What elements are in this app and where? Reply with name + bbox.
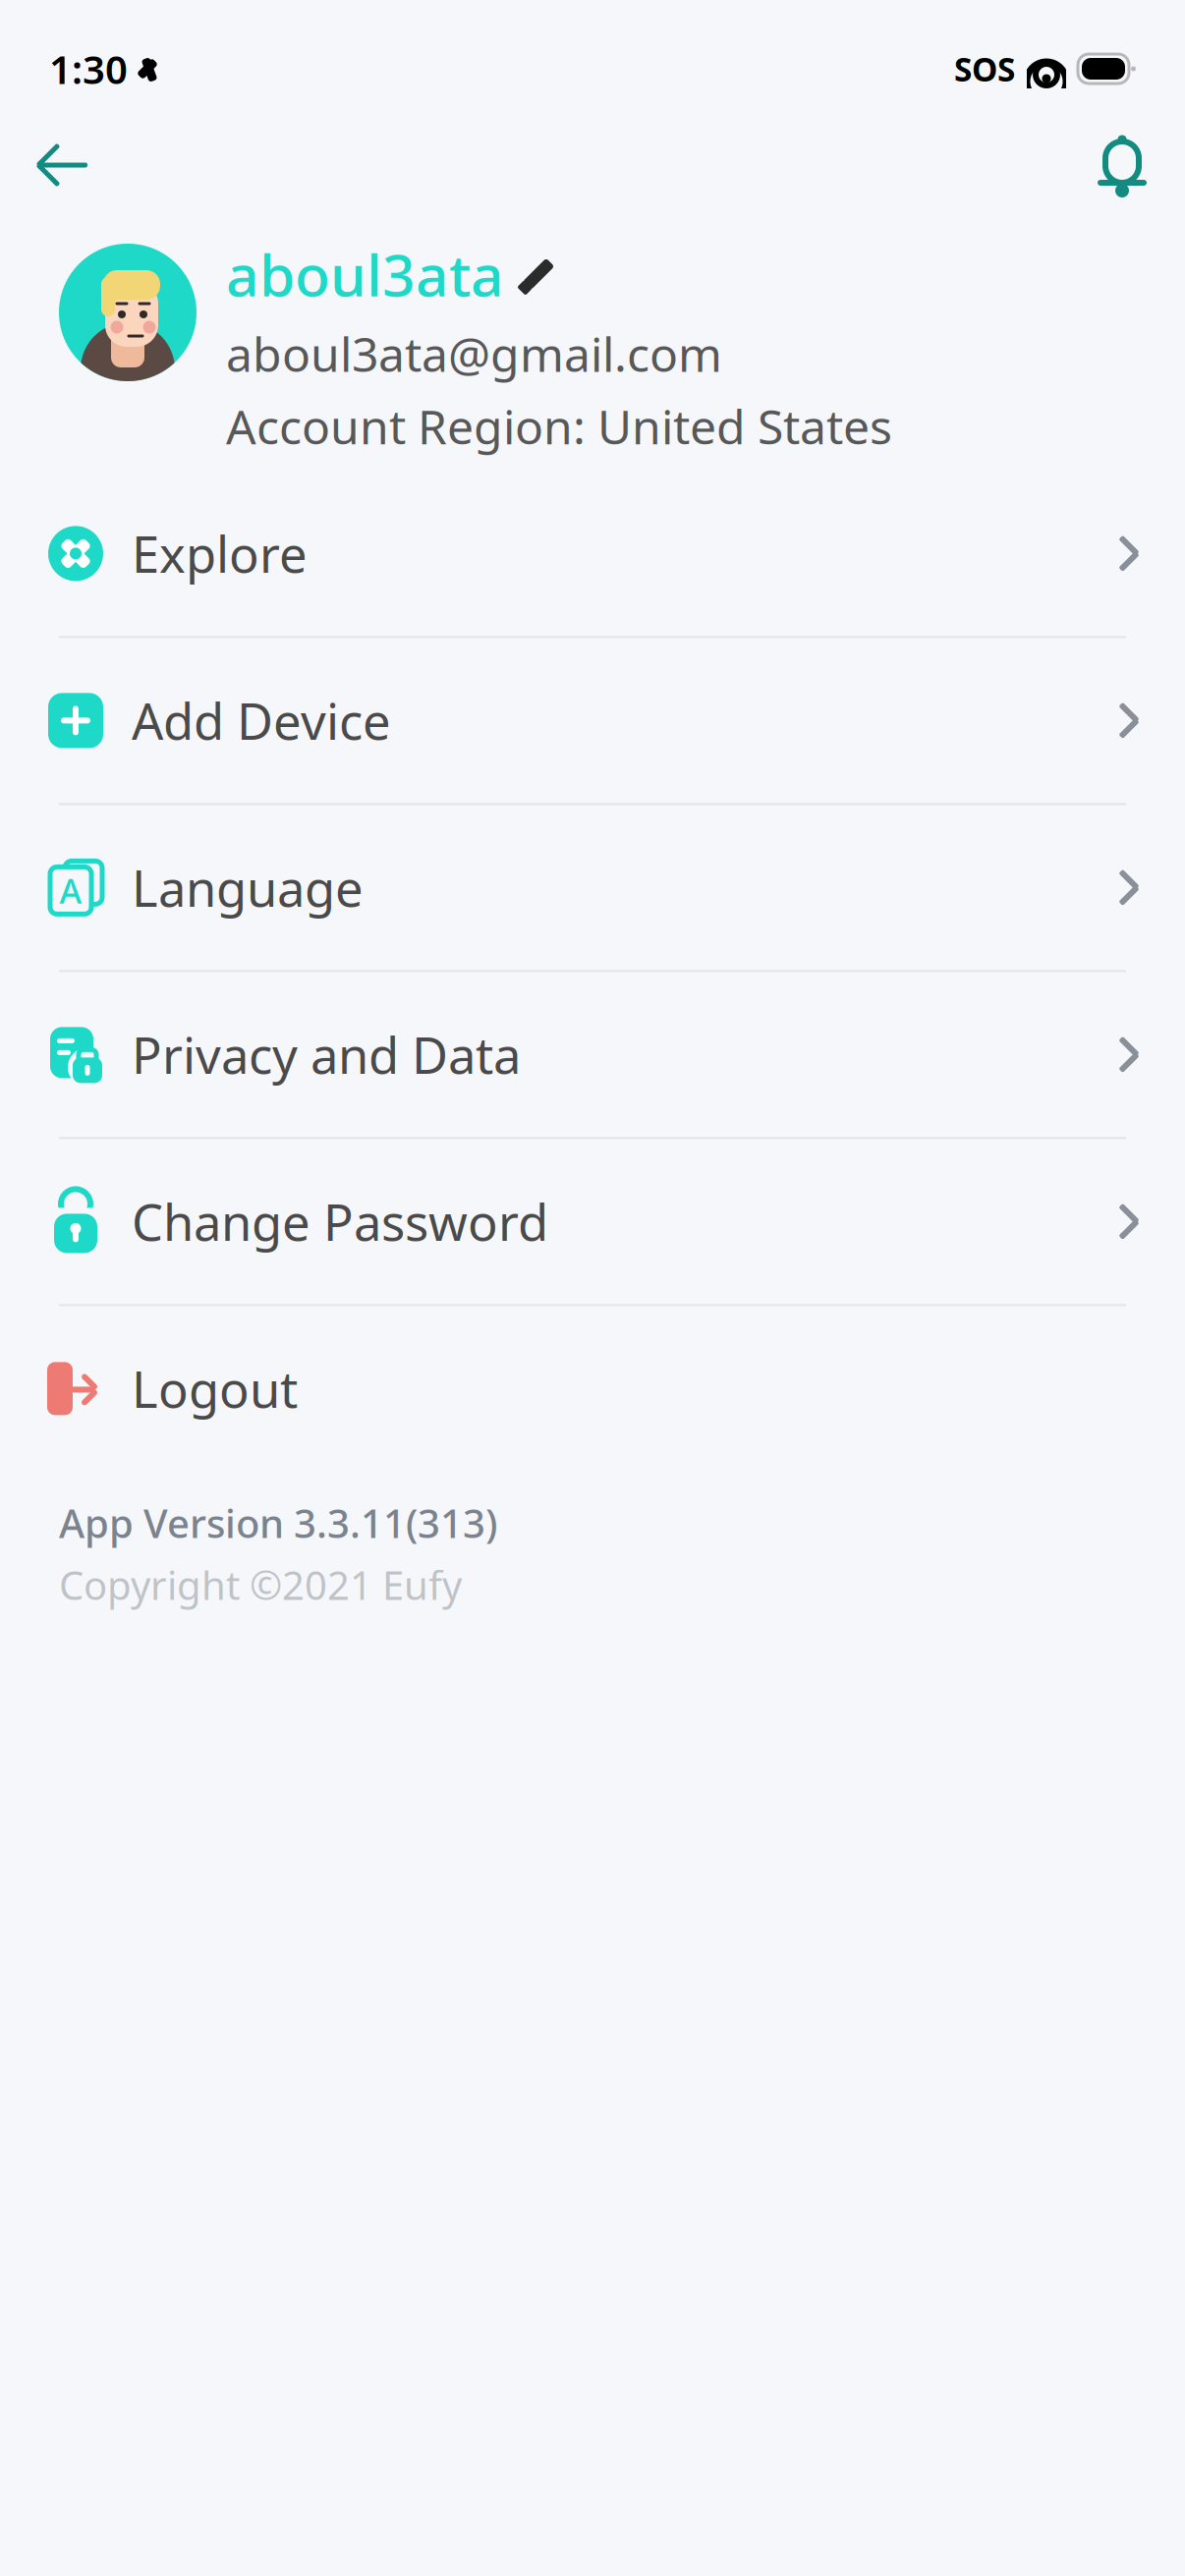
button[interactable]: A (0, 805, 1185, 970)
button[interactable]: Back (24, 126, 102, 204)
staticText: aboul3ata (226, 236, 504, 312)
staticText: Account Region: United States (226, 395, 892, 457)
button[interactable]: aboul3ata (226, 236, 559, 312)
staticText: A (59, 868, 82, 913)
staticText: Logout (132, 1355, 298, 1422)
button[interactable]: Explore (0, 471, 1185, 636)
staticText: Language (132, 854, 364, 921)
staticText: Privacy and Data (132, 1021, 521, 1088)
button[interactable]: Notifications (1083, 126, 1161, 204)
staticText: Copyright ©2021 Eufy (59, 1559, 462, 1611)
staticText: SOS (954, 47, 1015, 91)
staticText: Change Password (132, 1188, 548, 1255)
staticText: Add Device (132, 687, 391, 754)
staticText: App Version 3.3.11(313) (59, 1497, 497, 1549)
button[interactable]: Change Password (0, 1139, 1185, 1304)
button[interactable]: Add Device (0, 638, 1185, 803)
staticText: aboul3ata@gmail.com (226, 322, 722, 385)
button[interactable]: Logout (0, 1306, 1185, 1471)
staticText: 1:30 (49, 43, 128, 95)
staticText: Explore (132, 520, 308, 587)
button[interactable]: Privacy and Data (0, 972, 1185, 1137)
